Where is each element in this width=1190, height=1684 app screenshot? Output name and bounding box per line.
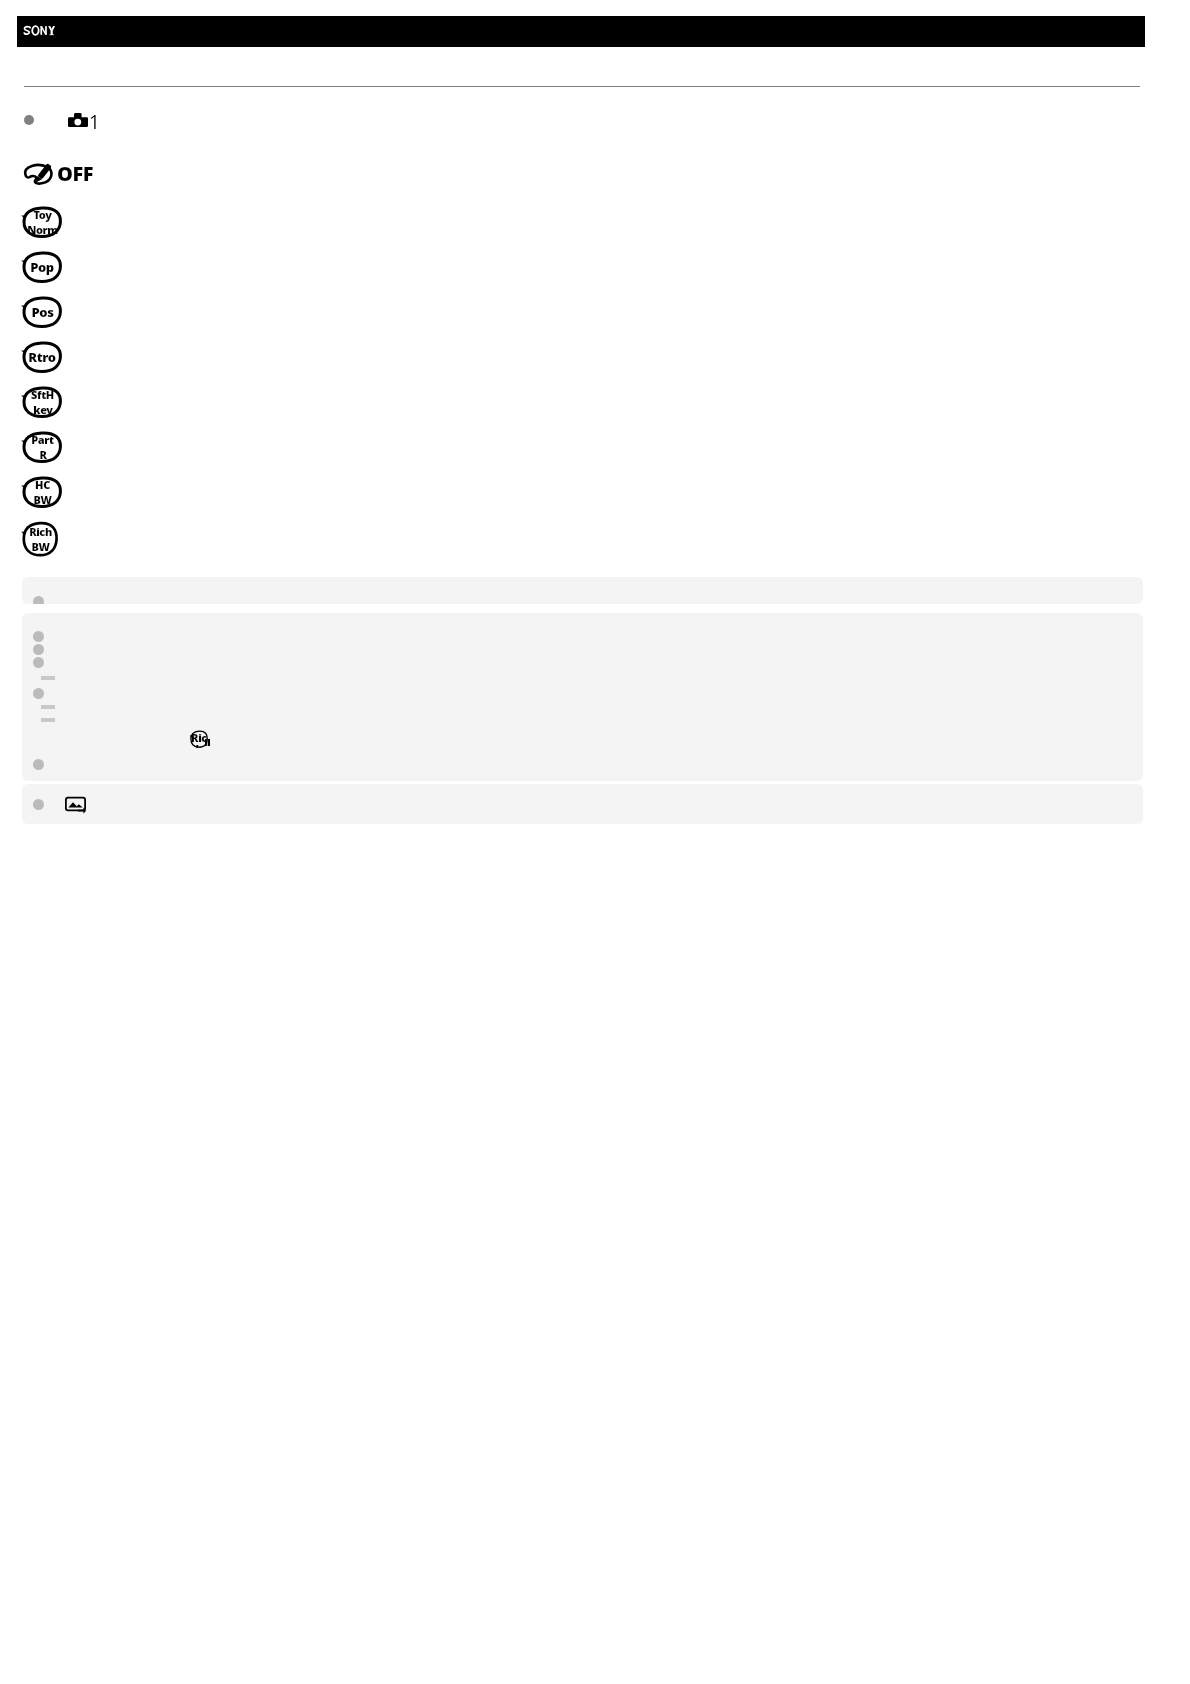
other: Picture Effect Off <box>22 161 93 187</box>
button[interactable]: Retro Photo <box>22 341 62 373</box>
staticText: OFF <box>57 160 93 186</box>
button[interactable]: Rich <box>22 613 1143 781</box>
staticText: Norm <box>27 222 58 237</box>
button[interactable] <box>17 16 1145 47</box>
staticText: BW <box>33 492 52 507</box>
other: Pop Color <box>22 251 62 283</box>
other: Camera settings 1 <box>68 113 88 127</box>
other: Rich-tone Mono <box>22 521 58 557</box>
other: Partial Color Red <box>22 431 62 463</box>
button[interactable]: View image <box>22 784 1143 824</box>
staticText: HC <box>35 477 50 492</box>
staticText: Toy <box>33 207 52 222</box>
other: Soft High-key <box>22 386 62 418</box>
button[interactable]: Toy Camera <box>22 206 62 238</box>
staticText: Rtro <box>28 348 56 366</box>
button[interactable]: Picture Effect Off <box>22 161 93 187</box>
button[interactable]: High Contrast Mono <box>22 476 62 508</box>
staticText: Pos <box>31 303 54 321</box>
staticText: Rich <box>29 524 52 539</box>
other: Toy Camera <box>22 206 62 238</box>
button[interactable]: Rich-tone Mono <box>22 521 58 557</box>
button[interactable]: Soft High-key <box>22 386 62 418</box>
other: Retro Photo <box>22 341 62 373</box>
staticText: Rich <box>190 730 208 748</box>
staticText: SftH <box>31 387 54 402</box>
other: View image <box>65 795 86 813</box>
button[interactable]: Camera settings 1 <box>24 109 100 131</box>
staticText: key <box>33 402 53 417</box>
button[interactable]: Pop Color <box>22 251 62 283</box>
staticText: 1 <box>89 109 100 131</box>
staticText: Part <box>31 432 54 447</box>
other: High Contrast Mono <box>22 476 62 508</box>
button[interactable]: Partial Color Red <box>22 431 62 463</box>
staticText: BW <box>31 539 50 554</box>
button[interactable]: Posterization <box>22 296 62 328</box>
staticText: Pop <box>30 258 54 276</box>
staticText: R <box>39 447 47 462</box>
other: Posterization <box>22 296 62 328</box>
